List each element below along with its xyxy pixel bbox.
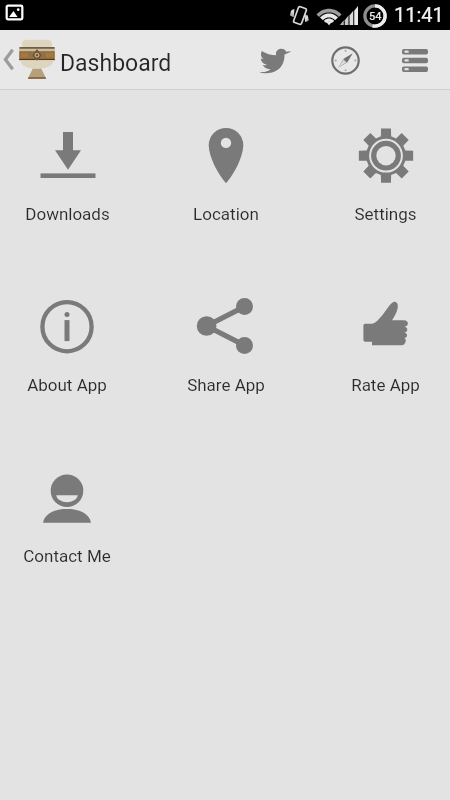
- button[interactable]: Contact Me: [0, 468, 142, 578]
- button[interactable]: Share App: [151, 297, 301, 407]
- button[interactable]: Rate App: [310, 297, 450, 407]
- button[interactable]: About App: [0, 297, 142, 407]
- button[interactable]: Location: [151, 126, 301, 236]
- staticText: 54: [369, 10, 382, 23]
- button[interactable]: Settings: [310, 126, 450, 236]
- staticText: Location: [193, 204, 259, 224]
- staticText: Dashboard: [60, 50, 172, 77]
- button[interactable]: Twitter: [251, 41, 297, 79]
- button[interactable]: Explore: [322, 41, 368, 79]
- button[interactable]: Downloads: [0, 126, 142, 236]
- staticText: Settings: [354, 204, 417, 224]
- staticText: Rate App: [351, 375, 420, 395]
- staticText: 11:41: [394, 3, 444, 26]
- staticText: Share App: [187, 375, 265, 395]
- button[interactable]: Up: [0, 30, 59, 89]
- staticText: About App: [27, 375, 107, 395]
- staticText: Contact Me: [23, 546, 111, 566]
- staticText: Downloads: [25, 204, 110, 224]
- button[interactable]: Menu: [392, 41, 438, 79]
